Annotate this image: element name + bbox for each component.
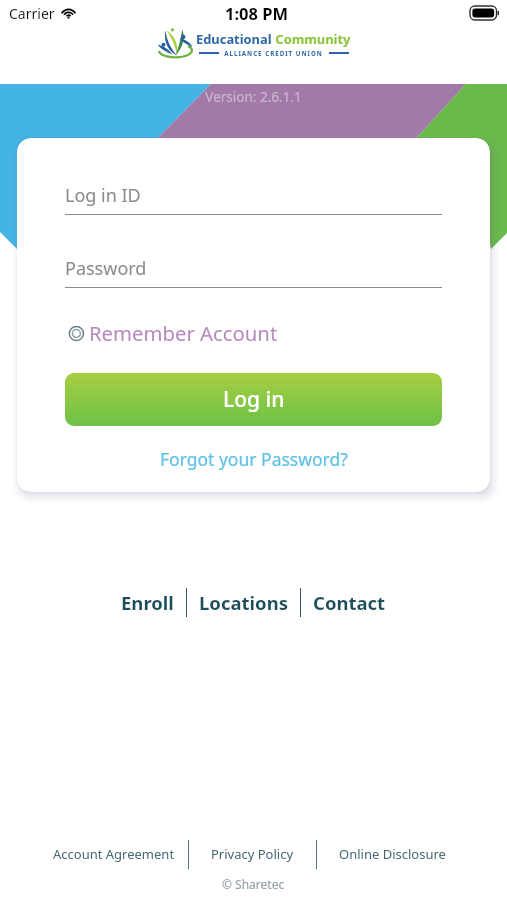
button[interactable]: Locations <box>187 584 300 621</box>
button[interactable]: Remember Account <box>65 319 278 347</box>
staticText: © Sharetec <box>222 876 285 892</box>
staticText: Community <box>272 30 351 48</box>
button[interactable]: Log in ID <box>65 183 442 215</box>
staticText: Remember Account <box>89 319 278 347</box>
staticText: Log in ID <box>65 183 141 208</box>
button[interactable]: Forgot your Password? <box>154 442 354 476</box>
staticText: Carrier <box>9 4 55 23</box>
button[interactable]: Account Agreement <box>40 838 188 870</box>
staticText: ALLIANCE CREDIT UNION <box>219 49 329 57</box>
button[interactable]: Enroll <box>109 584 186 621</box>
staticText: Password <box>65 256 147 281</box>
button[interactable]: Log in <box>65 373 442 426</box>
button[interactable]: Online Disclosure <box>317 838 468 870</box>
button[interactable]: Privacy Policy <box>189 838 316 870</box>
button[interactable]: Contact <box>301 584 398 621</box>
button[interactable]: Password <box>65 256 442 288</box>
staticText: Version: 2.6.1.1 <box>0 88 507 106</box>
staticText: 1:08 PM <box>225 2 289 24</box>
staticText: Log in <box>223 385 285 414</box>
staticText: Educational <box>196 30 272 48</box>
